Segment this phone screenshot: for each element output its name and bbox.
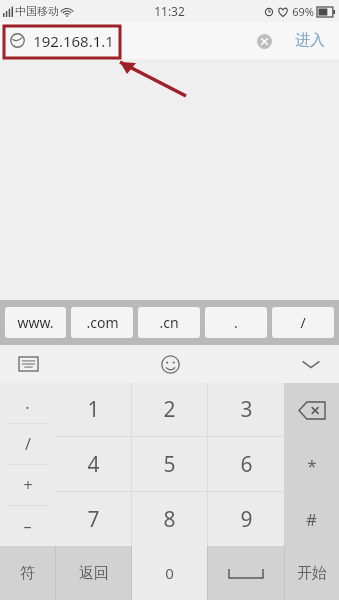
button[interactable]: www. [5,307,66,338]
staticText: 8 [163,505,176,534]
staticText: . [234,313,238,332]
button[interactable]: Space [208,546,284,600]
button[interactable]: 进入 [281,22,339,59]
button[interactable]: 6 [208,437,284,491]
button[interactable]: .cn [138,307,200,338]
staticText: 11:32 [154,3,185,19]
button[interactable]: / [272,307,334,338]
staticText: 1 [87,395,100,424]
button[interactable]: # [284,492,339,546]
staticText: 0 [165,563,174,583]
button[interactable]: 0 [132,546,207,600]
button[interactable]: 5 [132,437,207,491]
button[interactable]: * [284,438,339,492]
button[interactable]: Switch keyboard [0,345,56,383]
button[interactable]: 3 [208,383,284,436]
staticText: .cn [159,313,179,332]
button[interactable]: 8 [132,492,207,546]
staticText: 69% [292,4,314,19]
button[interactable]: / [0,424,55,464]
staticText: 进入 [295,31,325,50]
button[interactable]: Hide keyboard [283,345,339,383]
staticText: # [306,508,317,531]
button[interactable]: 7 [55,492,131,546]
staticText: 192.168.1.1 [33,31,114,51]
staticText: 3 [240,395,253,424]
staticText: 4 [87,450,100,479]
staticText: . [25,392,30,414]
staticText: / [25,433,31,455]
staticText: 中国移动 [15,4,59,18]
staticText: 返回 [79,564,109,583]
button[interactable]: . [0,383,55,423]
button[interactable]: + [0,465,55,505]
button[interactable]: 2 [132,383,207,436]
button[interactable]: . [205,307,267,338]
button[interactable]: .com [71,307,133,338]
staticText: 9 [240,505,253,534]
staticText: 2 [163,395,176,424]
staticText: * [307,454,317,477]
button[interactable]: 返回 [56,546,131,600]
staticText: + [23,474,33,496]
button[interactable]: 1 [55,383,131,436]
button[interactable]: Emoji [148,345,192,383]
button[interactable]: 4 [55,437,131,491]
staticText: 6 [240,450,253,479]
staticText: www. [17,313,54,332]
staticText: / [300,313,306,332]
button[interactable]: 符 [0,546,55,600]
staticText: 符 [20,564,35,583]
button[interactable]: Backspace [284,383,339,438]
staticText: 开始 [297,564,327,583]
button[interactable]: 9 [208,492,284,546]
staticText: – [23,515,32,537]
button[interactable]: – [0,506,55,546]
staticText: 7 [87,505,100,534]
button[interactable]: Clear [247,24,281,58]
staticText: .com [86,313,119,332]
button[interactable]: 开始 [285,546,339,600]
staticText: 5 [163,450,176,479]
